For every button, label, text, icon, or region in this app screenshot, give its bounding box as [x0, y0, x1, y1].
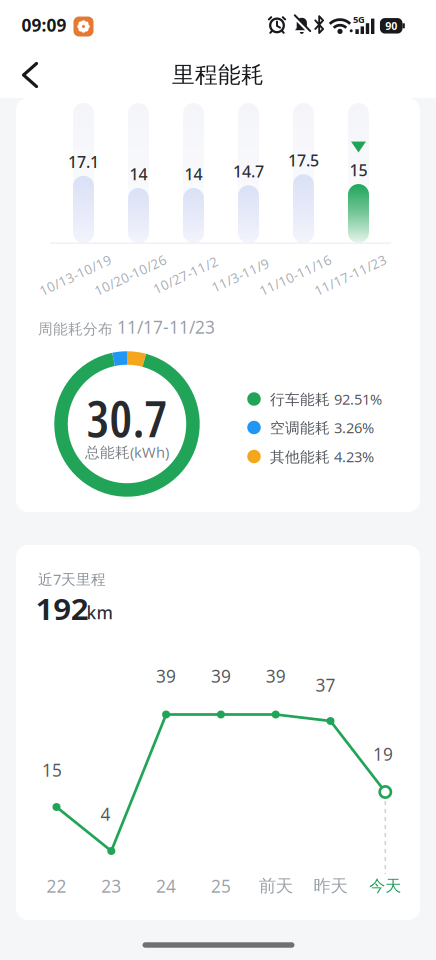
staticText: 5G	[353, 13, 365, 26]
staticText: 昨天	[313, 875, 347, 897]
staticText: 17.1	[68, 151, 99, 172]
staticText: 30.7	[86, 383, 167, 452]
staticText: 周能耗分布 11/17-11/23	[38, 315, 215, 338]
staticText: 11/3-11/9	[209, 266, 271, 284]
staticText: 11/10-11/16	[256, 266, 334, 284]
staticText: 37	[315, 673, 335, 696]
staticText: 近7天里程	[38, 569, 106, 589]
staticText: 15	[349, 159, 367, 181]
staticText: 总能耗(kWh)	[85, 442, 169, 462]
staticText: 14	[184, 163, 202, 185]
staticText: 4	[100, 802, 110, 825]
staticText: 39	[211, 664, 231, 687]
staticText: 里程能耗	[172, 61, 264, 89]
staticText: 19	[373, 742, 393, 765]
staticText: 39	[156, 664, 176, 687]
staticText: 14.7	[233, 161, 264, 182]
staticText: 39	[266, 664, 286, 687]
staticText: 10/27-11/2	[150, 266, 220, 284]
staticText: 17.5	[288, 150, 319, 171]
staticText: 90	[385, 19, 397, 33]
staticText: 11/17-11/23	[311, 266, 389, 284]
staticText: 15	[42, 758, 62, 781]
staticText: 10/13-10/19	[36, 266, 114, 284]
staticText: 行车能耗 92.51%	[270, 389, 382, 409]
staticText: 24	[156, 874, 176, 897]
staticText: 前天	[259, 875, 293, 897]
button[interactable]	[8, 53, 52, 97]
staticText: 23	[101, 874, 121, 897]
staticText: 14	[129, 163, 147, 185]
staticText: 192	[38, 590, 86, 628]
staticText: 空调能耗 3.26%	[270, 418, 374, 437]
staticText: 今天	[369, 876, 401, 896]
staticText: 10/20-10/26	[91, 266, 169, 284]
staticText: km	[86, 601, 112, 624]
staticText: 22	[46, 874, 66, 897]
staticText: 其他能耗 4.23%	[270, 447, 374, 466]
staticText: 25	[211, 874, 231, 897]
staticText: 09:09	[21, 13, 66, 36]
